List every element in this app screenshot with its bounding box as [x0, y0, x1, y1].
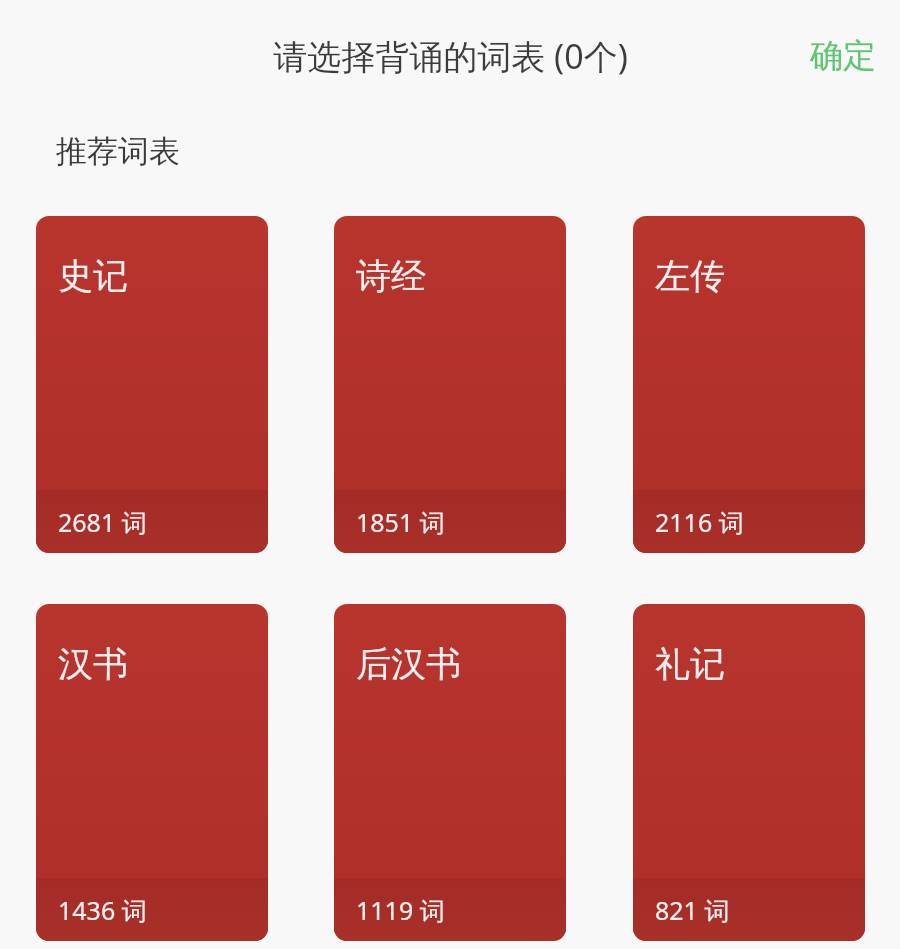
staticText: 1851 词: [356, 505, 445, 539]
button[interactable]: 后汉书: [334, 604, 566, 941]
button[interactable]: 史记: [36, 216, 268, 553]
staticText: 诗经: [356, 254, 426, 298]
staticText: 推荐词表: [56, 132, 180, 171]
button[interactable]: 诗经: [334, 216, 566, 553]
staticText: 1436 词: [58, 893, 147, 927]
button[interactable]: 左传: [633, 216, 865, 553]
button[interactable]: 确定: [786, 23, 900, 89]
staticText: 礼记: [655, 642, 725, 686]
staticText: 左传: [655, 254, 725, 298]
button[interactable]: 礼记: [633, 604, 865, 941]
staticText: 确定: [810, 35, 876, 77]
staticText: 请选择背诵的词表 (0个): [273, 33, 628, 79]
staticText: 1119 词: [356, 893, 445, 927]
staticText: 汉书: [58, 642, 128, 686]
staticText: 后汉书: [356, 642, 461, 686]
staticText: 2116 词: [655, 505, 744, 539]
staticText: 史记: [58, 254, 128, 298]
button[interactable]: 汉书: [36, 604, 268, 941]
staticText: 2681 词: [58, 505, 147, 539]
staticText: 821 词: [655, 893, 730, 927]
